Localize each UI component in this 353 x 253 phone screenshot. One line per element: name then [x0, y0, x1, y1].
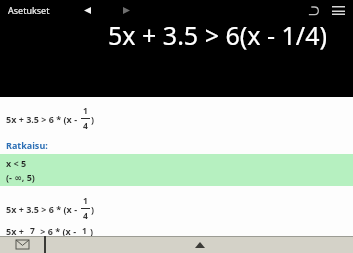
- staticText: 1: [83, 195, 88, 207]
- staticText: > 6 * (x -: [38, 225, 79, 236]
- staticText: x < 5: [6, 157, 27, 169]
- button[interactable]: Asetukset: [6, 2, 52, 18]
- staticText: ): [90, 225, 94, 236]
- button[interactable]: Show keyboard: [46, 236, 353, 253]
- button[interactable]: Next step: [117, 1, 135, 19]
- staticText: 5x + 3.5 > 6 * (x -: [6, 203, 80, 215]
- staticText: Asetukset: [8, 4, 50, 16]
- staticText: 1: [82, 225, 87, 236]
- button[interactable]: Undo: [303, 0, 323, 20]
- staticText: (- ∞, 5): [6, 171, 35, 183]
- staticText: ): [91, 113, 95, 125]
- staticText: Ratkaisu:: [6, 139, 48, 151]
- staticText: 1: [83, 105, 88, 117]
- staticText: 4: [83, 210, 88, 222]
- button[interactable]: Messages: [0, 236, 44, 253]
- staticText: 5x +: [6, 225, 27, 236]
- button[interactable]: x < 5: [0, 154, 353, 186]
- button[interactable]: Ratkaisu:: [6, 139, 48, 151]
- staticText: 5x + 3.5 > 6(x - 1/4): [108, 18, 327, 52]
- button[interactable]: Previous step: [78, 1, 96, 19]
- staticText: 7: [30, 225, 35, 236]
- staticText: 4: [83, 120, 88, 132]
- staticText: ): [91, 203, 95, 215]
- button[interactable]: Menu: [327, 0, 349, 20]
- staticText: 5x + 3.5 > 6 * (x -: [6, 113, 80, 125]
